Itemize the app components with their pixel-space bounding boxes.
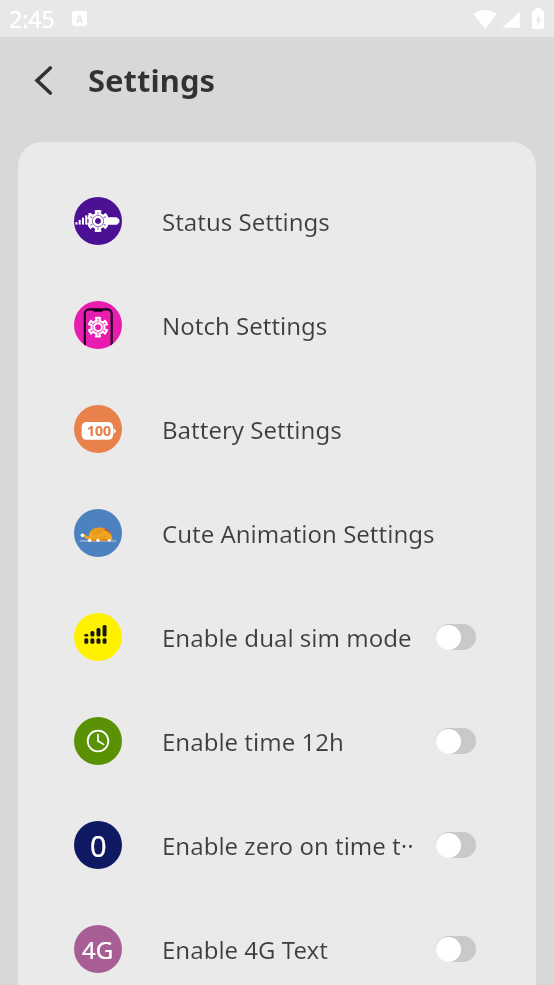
button[interactable]: Enable time 12h	[436, 727, 476, 755]
staticText: Cute Animation Settings	[162, 517, 476, 550]
staticText: Enable 4G Text	[162, 933, 436, 966]
button[interactable]: Notch Settings	[18, 273, 536, 377]
staticText: 4G	[82, 933, 114, 966]
button[interactable]: Enable time 12h	[18, 689, 536, 793]
button[interactable]: 4G	[18, 897, 536, 985]
staticText: Enable time 12h	[162, 725, 436, 758]
staticText: A	[76, 12, 83, 26]
staticText: 100	[87, 421, 112, 440]
staticText: Enable zero on time t··	[162, 829, 436, 862]
staticText: 2:45	[9, 3, 55, 34]
button[interactable]: Status Settings	[18, 169, 536, 273]
staticText: Notch Settings	[162, 309, 476, 342]
button[interactable]: Cute Animation Settings	[18, 481, 536, 585]
button[interactable]: Enable zero on time t··	[436, 831, 476, 859]
staticText: 0	[90, 826, 107, 865]
button[interactable]: Enable dual sim mode	[18, 585, 536, 689]
staticText: Status Settings	[162, 205, 476, 238]
button[interactable]: Enable dual sim mode	[436, 623, 476, 651]
button[interactable]: Back	[21, 58, 65, 102]
button[interactable]: 100	[18, 377, 536, 481]
button[interactable]: 0	[18, 793, 536, 897]
staticText: Battery Settings	[162, 413, 476, 446]
staticText: Enable dual sim mode	[162, 621, 436, 654]
staticText: Settings	[88, 59, 216, 101]
button[interactable]: Enable 4G Text	[436, 935, 476, 963]
